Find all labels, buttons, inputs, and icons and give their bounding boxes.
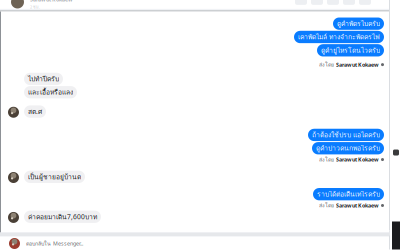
staticText: ค่าคอยมาเดิน7,600บาท	[28, 212, 97, 222]
staticText: ส่งโดย	[319, 201, 334, 210]
button[interactable]: Open pane	[392, 0, 399, 155]
staticText: ไปทำปีครับ	[28, 74, 59, 84]
staticText: ดูคำปาวคนกพอไรครับ	[316, 143, 380, 153]
staticText: Sarawut Kokaew	[336, 156, 379, 163]
button[interactable]: Sarawut Kokaew	[0, 0, 73, 12]
staticText: และเอื้อหรือแลง	[28, 87, 73, 97]
staticText: เคาพัดไมล์ ทางจำกะพัดครไฟ	[298, 32, 380, 42]
staticText: 2 ชม.	[30, 4, 40, 10]
button[interactable]: ตอบกลับใน Messenger...	[0, 236, 400, 250]
staticText: ถ้าต้องใช้ปรบ แอไดครับ	[312, 130, 380, 140]
staticText: ส่งโดย	[319, 60, 334, 69]
staticText: Sarawut Kokaew	[30, 0, 73, 3]
staticText: ราบได้ต่อเดืนเทไรครับ	[317, 189, 380, 199]
button[interactable]: ไปทำปีครับ	[0, 73, 400, 118]
staticText: ดูคำพัดรไบครับ	[337, 18, 380, 29]
staticText: Sarawut Kokaew	[336, 61, 379, 68]
staticText: ตอบกลับใน Messenger...	[26, 239, 83, 248]
staticText: สต.ศ	[28, 106, 42, 117]
staticText: ส่งโดย	[319, 155, 334, 164]
staticText: ดูคำยู่ไหรโดนไวครับ	[321, 45, 380, 55]
staticText: Sarawut Kokaew	[336, 202, 379, 209]
staticText: เป็นผู้ชายอยู่บ้านต	[28, 172, 81, 182]
button[interactable]: ดูคำพัดรไบครับ	[0, 17, 400, 69]
button[interactable]: ค่าคอยมาเดิน7,600บาท	[0, 211, 400, 223]
button[interactable]: เป็นผู้ชายอยู่บ้านต	[0, 171, 400, 183]
button[interactable]: ราบได้ต่อเดืนเทไรครับ	[0, 188, 400, 210]
button[interactable]: ถ้าต้องใช้ปรบ แอไดครับ	[0, 129, 400, 164]
